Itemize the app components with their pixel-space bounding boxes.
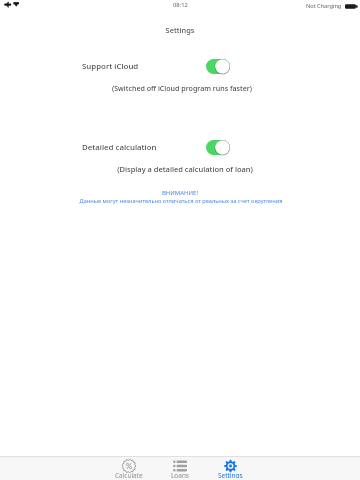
staticText: 08:12 (173, 1, 188, 9)
button[interactable]: Settings (205, 459, 256, 480)
button[interactable]: Calculate (103, 459, 154, 480)
staticText: Settings (0, 25, 360, 35)
staticText: Detailed calculation (82, 142, 157, 153)
button[interactable]: Detailed calculation (206, 140, 230, 155)
staticText: Settings (218, 471, 243, 478)
staticText: Calculate (115, 471, 143, 478)
staticText: (Switched off iCloud program runs faster… (2, 83, 360, 93)
staticText: Loans (171, 471, 189, 478)
button[interactable]: Support iCloud (206, 59, 230, 74)
staticText: Support iCloud (82, 61, 139, 72)
staticText: ВНИМАНИЕ! (0, 189, 360, 197)
staticText: Not Charging (306, 2, 342, 10)
staticText: (Display a detailed calculation of loan) (5, 164, 360, 174)
staticText: Данные могут незначительно отличаться от… (1, 197, 360, 205)
button[interactable]: Loans (154, 459, 205, 480)
button[interactable]: Detailed calculation (82, 139, 230, 156)
button[interactable]: Support iCloud (82, 58, 230, 75)
